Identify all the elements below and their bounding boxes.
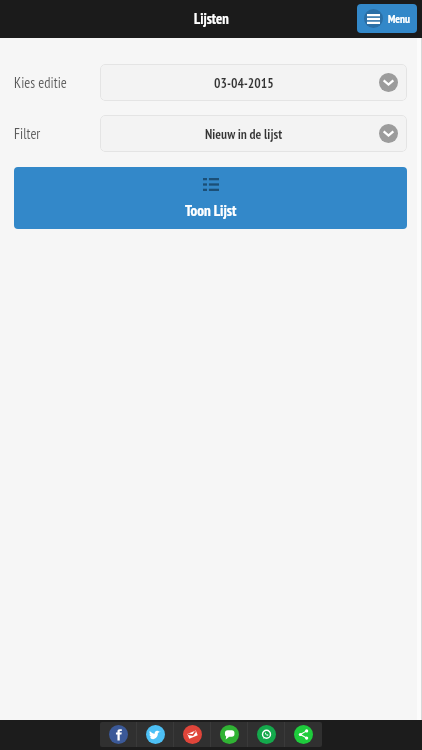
button[interactable]: Message [211,722,248,747]
button[interactable]: Nieuw in de lijst [100,115,407,152]
button[interactable]: Menu [357,4,417,33]
staticText: Nieuw in de lijst [205,125,283,142]
button[interactable]: WhatsApp [248,722,285,747]
button[interactable]: Toon Lijst [14,167,407,229]
button[interactable]: Facebook [100,722,137,747]
button[interactable]: Share [285,722,322,747]
staticText: Menu [388,12,410,26]
button[interactable]: Twitter [137,722,174,747]
button[interactable]: 03-04-2015 [100,64,407,101]
staticText: Lijsten [194,9,229,28]
staticText: Kies editie [14,73,100,92]
button[interactable]: Email [174,722,211,747]
staticText: Toon Lijst [185,201,237,220]
staticText: 03-04-2015 [214,74,274,91]
staticText: Filter [14,124,100,143]
